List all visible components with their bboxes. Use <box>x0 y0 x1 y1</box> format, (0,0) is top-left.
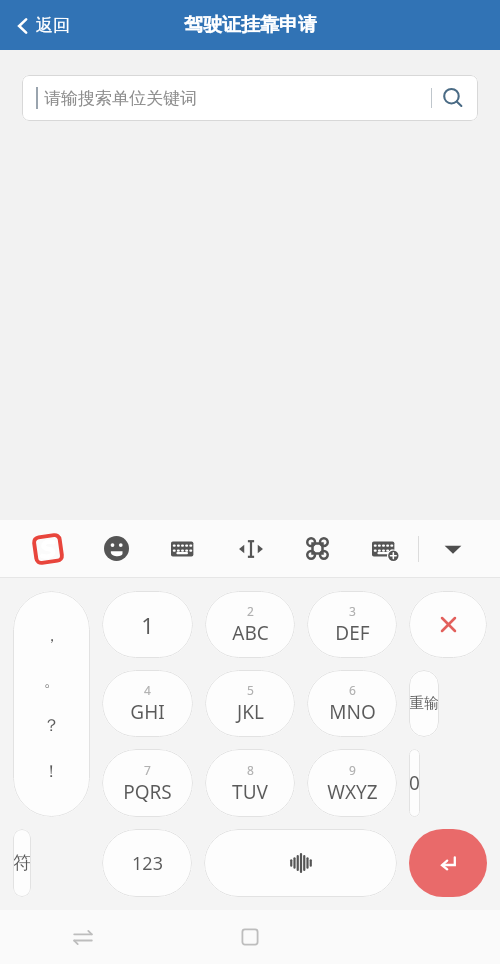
staticText: 123 <box>132 851 163 876</box>
button[interactable]: 符 <box>13 829 31 897</box>
button[interactable]: 0 <box>409 749 420 817</box>
staticText: 。 <box>44 671 60 691</box>
staticText: 4 <box>144 682 151 698</box>
staticText: DEF <box>335 620 370 646</box>
button[interactable]: ， <box>13 591 90 817</box>
button[interactable]: 1 <box>102 591 193 658</box>
button[interactable]: 8 <box>205 749 295 817</box>
other: Search <box>442 87 464 109</box>
staticText: GHI <box>130 699 165 725</box>
button[interactable]: 重输 <box>409 670 439 737</box>
button[interactable]: Emoji <box>82 520 150 577</box>
staticText: 8 <box>247 762 254 778</box>
button[interactable]: Recent apps <box>166 910 333 964</box>
staticText: JKL <box>237 699 264 725</box>
staticText: 3 <box>349 603 356 619</box>
staticText: 1 <box>141 610 154 640</box>
button[interactable]: 123 <box>102 829 192 897</box>
staticText: 驾驶证挂靠申请 <box>184 13 317 37</box>
button[interactable]: 5 <box>205 670 295 737</box>
staticText: 9 <box>349 762 356 778</box>
button[interactable]: 请输搜索单位关键词 <box>22 75 478 121</box>
staticText: 返回 <box>36 15 70 36</box>
button[interactable]: 6 <box>307 670 397 737</box>
staticText: WXYZ <box>327 779 378 805</box>
button[interactable]: 9 <box>307 749 397 817</box>
button[interactable]: 7 <box>102 749 193 817</box>
button[interactable]: Back <box>0 910 166 964</box>
staticText: PQRS <box>123 779 172 805</box>
staticText: ？ <box>43 715 60 736</box>
staticText: 2 <box>247 603 254 619</box>
button[interactable]: 2 <box>205 591 295 658</box>
staticText: 符 <box>13 852 31 875</box>
button[interactable]: Enter <box>409 829 487 897</box>
staticText: MNO <box>329 699 376 725</box>
staticText: 0 <box>409 770 420 796</box>
staticText: ！ <box>43 761 60 782</box>
staticText: TUV <box>232 779 268 805</box>
staticText: 请输搜索单位关键词 <box>44 88 197 109</box>
button[interactable]: Move cursor <box>217 520 284 577</box>
staticText: ABC <box>232 620 269 646</box>
staticText: 重输 <box>409 694 439 713</box>
button[interactable]: Keyboard settings <box>351 520 418 577</box>
button[interactable]: Sogou input method <box>14 520 82 577</box>
button[interactable]: 3 <box>307 591 397 658</box>
staticText: 6 <box>349 682 356 698</box>
button[interactable]: 4 <box>102 670 193 737</box>
button[interactable]: Delete <box>409 591 487 658</box>
staticText: 7 <box>144 762 151 778</box>
button[interactable]: Voice input <box>204 829 397 897</box>
staticText: 5 <box>247 682 254 698</box>
button[interactable]: Keyboard layout <box>150 520 217 577</box>
button[interactable]: Hide keyboard <box>419 520 486 577</box>
staticText: ， <box>44 626 60 646</box>
button[interactable]: 返回 <box>10 9 76 42</box>
button[interactable]: Shortcuts <box>284 520 351 577</box>
